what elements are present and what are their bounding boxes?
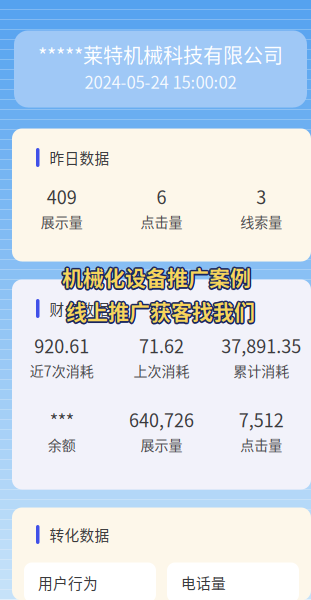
staticText: 线上推广获客找我们 [68, 295, 257, 326]
staticText: 机械化设备推广案例 [61, 263, 250, 293]
staticText: 线索量 [240, 211, 282, 232]
staticText: 线上推广获客找我们 [67, 294, 256, 325]
staticText: 点击量 [140, 211, 182, 232]
staticText: 线上推广获客找我们 [66, 295, 255, 326]
staticText: 转化数据 [49, 524, 109, 545]
staticText: 640,726 [129, 406, 194, 433]
staticText: 71.62 [139, 332, 184, 359]
staticText: 累计消耗 [233, 360, 289, 381]
staticText: 920.61 [34, 332, 89, 359]
staticText: *** [50, 406, 74, 433]
staticText: 机械化设备推广案例 [62, 261, 251, 292]
staticText: 409 [47, 183, 77, 210]
staticText: 机械化设备推广案例 [62, 260, 251, 290]
staticText: 线上推广获客找我们 [65, 297, 254, 327]
staticText: 电话量 [181, 572, 226, 593]
staticText: 6 [156, 183, 166, 210]
staticText: 机械化设备推广案例 [62, 263, 251, 293]
staticText: *****莱特机械科技有限公司 [38, 40, 283, 69]
staticText: 展示量 [140, 434, 182, 455]
staticText: 余额 [48, 434, 76, 455]
staticText: 近7次消耗 [30, 360, 94, 381]
button[interactable]: 用户行为 [24, 562, 156, 600]
staticText: 昨日数据 [49, 147, 109, 168]
staticText: 点击量 [240, 434, 282, 455]
staticText: 机械化设备推广案例 [60, 261, 249, 292]
staticText: 机械化设备推广案例 [63, 263, 252, 293]
staticText: 线上推广获客找我们 [66, 297, 255, 327]
staticText: 上次消耗 [133, 360, 189, 381]
staticText: 线上推广获客找我们 [65, 294, 254, 325]
staticText: 线上推广获客找我们 [64, 295, 253, 326]
staticText: 机械化设备推广案例 [64, 261, 253, 292]
staticText: 财务数据 [49, 298, 109, 319]
staticText: 展示量 [41, 211, 83, 232]
staticText: 7,512 [239, 406, 284, 433]
staticText: 用户行为 [38, 572, 98, 593]
staticText: 机械化设备推广案例 [61, 260, 250, 291]
button[interactable]: 电话量 [167, 562, 299, 600]
staticText: 机械化设备推广案例 [63, 260, 252, 291]
staticText: 线上推广获客找我们 [67, 297, 256, 327]
staticText: 线上推广获客找我们 [66, 294, 255, 324]
staticText: 2024-05-24 15:00:02 [84, 69, 236, 93]
staticText: 37,891.35 [221, 332, 301, 359]
staticText: 3 [256, 183, 266, 210]
